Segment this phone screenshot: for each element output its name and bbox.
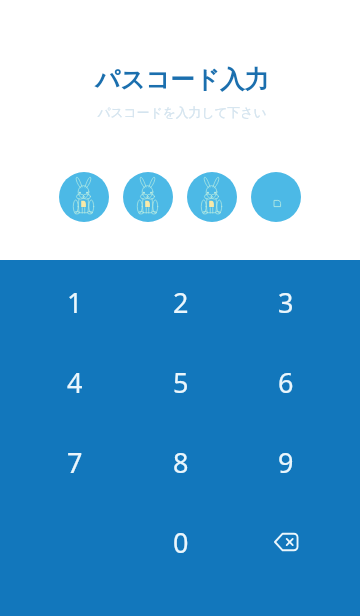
staticText: 3: [278, 284, 294, 321]
staticText: 1: [67, 284, 83, 321]
button[interactable]: 3: [233, 262, 338, 342]
button[interactable]: 8: [128, 422, 233, 502]
button[interactable]: 7: [22, 422, 128, 502]
button[interactable]: 4: [22, 342, 128, 422]
button[interactable]: 9: [233, 422, 338, 502]
staticText: パスコード入力: [95, 64, 269, 95]
staticText: 4: [67, 364, 83, 401]
staticText: 7: [67, 444, 83, 481]
button[interactable]: Backspace: [233, 502, 338, 582]
button[interactable]: 0: [128, 502, 233, 582]
staticText: 9: [278, 444, 294, 481]
staticText: 2: [173, 284, 189, 321]
staticText: パスコードを入力して下さい: [97, 105, 267, 121]
staticText: 0: [173, 524, 189, 561]
staticText: 6: [278, 364, 294, 401]
button[interactable]: 1: [22, 262, 128, 342]
staticText: 5: [173, 364, 189, 401]
staticText: 8: [173, 444, 189, 481]
button[interactable]: 5: [128, 342, 233, 422]
button[interactable]: 6: [233, 342, 338, 422]
button[interactable]: 2: [128, 262, 233, 342]
